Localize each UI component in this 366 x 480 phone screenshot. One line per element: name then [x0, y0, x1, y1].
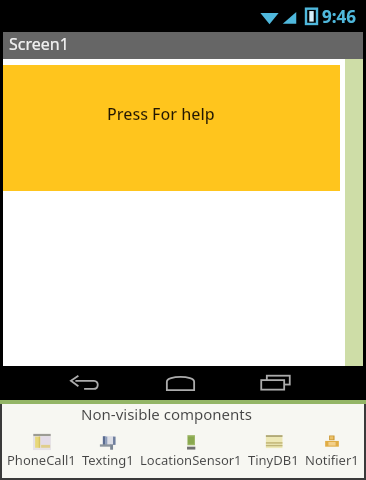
button[interactable]: Texting1 [81, 433, 135, 469]
staticText: LocationSensor1 [140, 451, 242, 469]
staticText: Press For help [107, 103, 215, 125]
staticText: PhoneCall1 [7, 451, 76, 469]
button[interactable]: Recent apps [252, 366, 299, 399]
button[interactable]: LocationSensor1 [139, 433, 243, 469]
button[interactable]: PhoneCall1 [6, 433, 77, 469]
staticText: Texting1 [82, 451, 134, 469]
button[interactable]: Back [61, 366, 108, 399]
staticText: Screen1 [9, 33, 69, 55]
staticText: TinyDB1 [248, 451, 299, 469]
button[interactable]: Press For help [3, 65, 340, 191]
staticText: Notifier1 [305, 451, 359, 469]
button[interactable]: Screen1 [3, 32, 363, 59]
button[interactable]: Home [157, 366, 204, 399]
staticText: 9:46 [322, 5, 356, 28]
button[interactable]: Notifier1 [304, 433, 360, 469]
button[interactable]: TinyDB1 [247, 433, 300, 469]
staticText: Non-visible components [2, 404, 331, 424]
